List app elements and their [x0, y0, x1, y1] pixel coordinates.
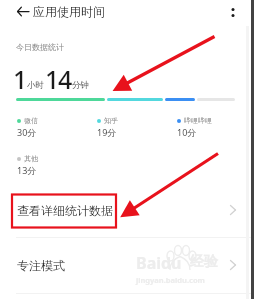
button[interactable]: Back	[10, 0, 35, 23]
staticText: 应用使用时间	[33, 4, 105, 19]
staticText: 30分	[17, 126, 37, 138]
staticText: 经验	[190, 253, 218, 271]
staticText: 微信	[24, 116, 38, 125]
staticText: 哔哩哔哩	[184, 116, 212, 125]
button[interactable]: 查看详细统计数据	[0, 183, 254, 237]
staticText: 今日数据统计	[16, 42, 64, 52]
staticText: Baidu	[136, 252, 182, 274]
staticText: 专注模式	[17, 258, 65, 273]
staticText: 小时	[27, 80, 44, 91]
button[interactable]: 专注模式	[0, 237, 254, 293]
staticText: 13分	[17, 164, 37, 176]
staticText: jingyan.baidu.com	[136, 275, 205, 285]
staticText: 10分	[177, 126, 197, 138]
staticText: 19分	[97, 126, 117, 138]
staticText: 查看详细统计数据	[17, 203, 113, 218]
staticText: 1	[13, 62, 27, 96]
staticText: 14	[45, 62, 72, 96]
staticText: 其他	[24, 154, 38, 163]
button[interactable]: More options	[222, 0, 244, 23]
staticText: 知乎	[104, 116, 118, 125]
staticText: 分钟	[72, 80, 89, 91]
